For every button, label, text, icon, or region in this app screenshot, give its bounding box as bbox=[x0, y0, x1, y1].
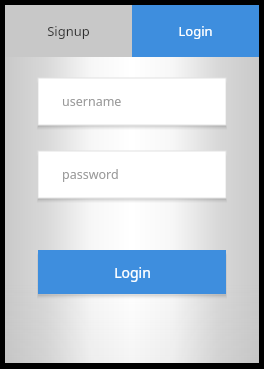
button[interactable]: username bbox=[38, 78, 226, 125]
button[interactable]: Login bbox=[38, 250, 226, 294]
staticText: username bbox=[62, 93, 122, 110]
staticText: Signup bbox=[47, 22, 90, 40]
button[interactable]: password bbox=[38, 151, 226, 198]
button[interactable]: Signup bbox=[5, 5, 132, 57]
staticText: Login bbox=[114, 263, 151, 282]
staticText: password bbox=[62, 166, 119, 183]
button[interactable]: Login bbox=[132, 5, 259, 57]
staticText: Login bbox=[178, 22, 213, 40]
